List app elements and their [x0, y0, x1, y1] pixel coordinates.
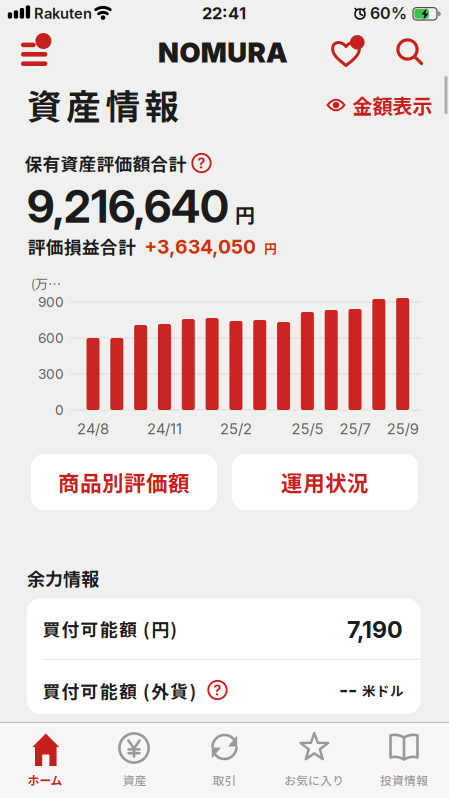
- staticText: 運用状況: [281, 466, 369, 497]
- staticText: 米ドル: [362, 680, 404, 700]
- staticText: 保有資産評価額合計: [24, 150, 186, 176]
- staticText: 買付可能額 (外貨): [42, 678, 196, 703]
- staticText: お気に入り: [284, 771, 344, 788]
- staticText: 0: [55, 402, 64, 418]
- staticText: Rakuten: [34, 4, 92, 22]
- staticText: 情: [105, 79, 140, 129]
- staticText: 金額表示: [352, 90, 432, 119]
- staticText: 商品別評価額: [58, 466, 190, 497]
- staticText: 25/9: [387, 420, 419, 438]
- staticText: 7,190: [347, 615, 403, 644]
- staticText: 24/8: [77, 420, 109, 438]
- staticText: 投資情報: [380, 771, 428, 788]
- staticText: 余力情報: [27, 565, 99, 591]
- staticText: 資産: [123, 771, 147, 788]
- staticText: 25/2: [220, 420, 252, 438]
- staticText: ?: [213, 682, 221, 699]
- staticText: 産: [66, 79, 101, 129]
- staticText: 取引: [212, 771, 236, 788]
- staticText: 300: [38, 366, 64, 382]
- staticText: 円: [264, 238, 277, 257]
- staticText: 円: [235, 199, 255, 228]
- staticText: 評価損益合計: [28, 233, 136, 259]
- staticText: NOMURA: [158, 36, 288, 69]
- staticText: ?: [197, 155, 205, 172]
- staticText: --: [339, 678, 357, 702]
- staticText: +3,634,050: [144, 235, 256, 258]
- staticText: 60%: [370, 4, 407, 23]
- staticText: 22:41: [202, 3, 246, 23]
- staticText: 資: [27, 79, 62, 129]
- staticText: 25/5: [291, 420, 323, 438]
- staticText: 900: [38, 294, 64, 310]
- staticText: 9,216,640: [27, 180, 229, 233]
- staticText: 600: [38, 330, 64, 346]
- staticText: 24/11: [147, 420, 182, 438]
- staticText: (万…: [31, 274, 61, 292]
- staticText: 報: [145, 79, 180, 129]
- staticText: 買付可能額 (円): [42, 616, 177, 641]
- staticText: ホーム: [27, 771, 62, 788]
- staticText: 25/7: [339, 420, 370, 438]
